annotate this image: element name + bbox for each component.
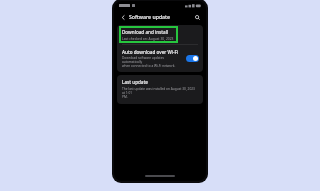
staticText: Auto download over Wi-Fi bbox=[122, 49, 179, 55]
button[interactable]: Download and install bbox=[117, 25, 203, 44]
button[interactable]: Search bbox=[192, 12, 202, 22]
staticText: Download and install bbox=[122, 29, 169, 35]
button[interactable]: Back bbox=[118, 12, 128, 22]
staticText: The last update was installed on August … bbox=[122, 87, 198, 99]
button[interactable]: Auto download over Wi-Fi bbox=[117, 45, 203, 72]
staticText: Last update bbox=[122, 79, 148, 85]
button[interactable]: Last update bbox=[117, 75, 203, 104]
staticText: Last checked on: August 30, 2023 bbox=[122, 36, 174, 40]
button[interactable]: Auto download over Wi-Fi toggle bbox=[186, 55, 199, 62]
staticText: Software update bbox=[129, 13, 171, 20]
staticText: Download software updates automatically … bbox=[122, 56, 183, 68]
